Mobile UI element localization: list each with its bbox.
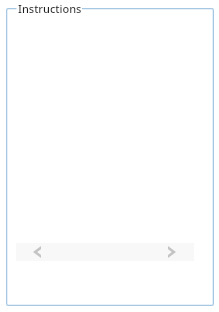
button[interactable]: Next <box>149 243 194 261</box>
staticText: Instructions <box>18 1 82 16</box>
button[interactable]: Previous <box>16 243 58 261</box>
